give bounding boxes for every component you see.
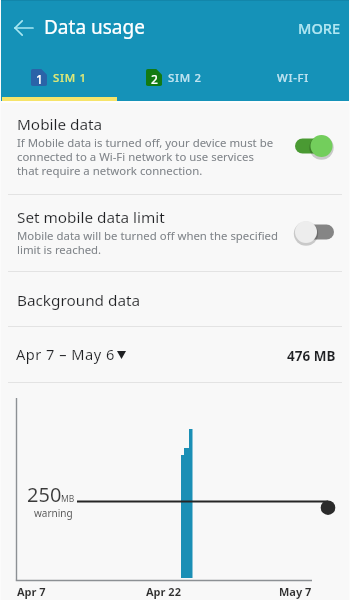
button[interactable]: Navigate up [10,14,38,42]
staticText: Data usage [44,14,145,40]
button[interactable]: 2 [126,55,236,98]
button[interactable] [0,272,350,326]
button[interactable] [0,102,350,194]
button[interactable]: WI-FI [262,55,324,98]
staticText: WI-FI [277,70,309,86]
staticText: Mobile data will be turned off when the … [17,228,278,257]
staticText: Apr 7 [17,584,46,599]
staticText: SIM 2 [168,70,202,86]
staticText: 1 [36,71,43,87]
staticText: 476 MB [287,347,336,365]
staticText: 250 [27,481,62,508]
staticText: May 7 [279,584,312,599]
staticText: MB [61,493,75,505]
button[interactable]: Apr 7 – May 6 [9,338,131,370]
staticText: warning [34,506,73,520]
staticText: 2 [151,71,158,87]
staticText: Mobile data [17,114,103,135]
staticText: Apr 7 – May 6 [16,344,115,364]
staticText: Set mobile data limit [17,207,165,228]
button[interactable]: Switch off [295,220,334,244]
staticText: Background data [17,290,141,311]
staticText: SIM 1 [53,70,87,86]
button[interactable]: MORE [290,11,349,45]
staticText: MORE [298,18,341,38]
staticText: Apr 22 [146,584,181,599]
button[interactable]: Switch on [295,134,334,158]
button[interactable]: 1 [11,55,121,98]
button[interactable] [0,195,350,271]
staticText: If Mobile data is turned off, your devic… [17,135,274,178]
